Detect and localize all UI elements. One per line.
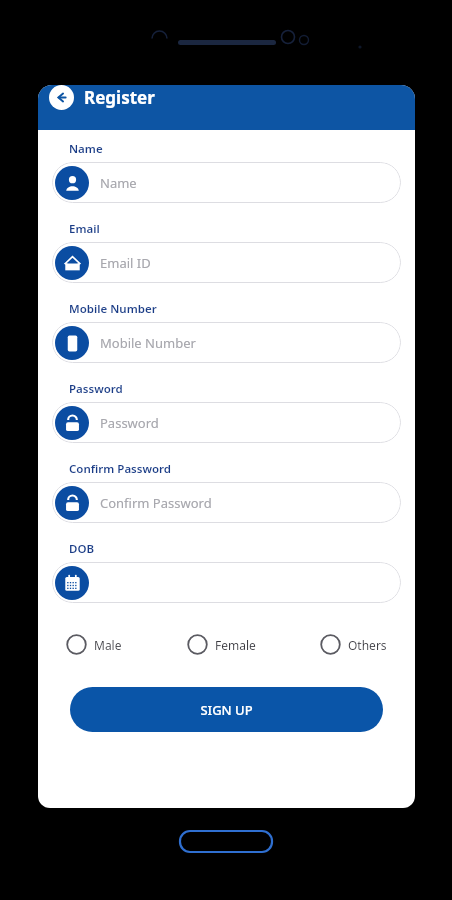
staticText: Password [100, 414, 159, 432]
button[interactable]: SIGN UP [70, 687, 383, 732]
staticText: Name [69, 141, 103, 157]
staticText: Mobile Number [100, 334, 196, 352]
button[interactable]: Male [66, 634, 122, 655]
button[interactable]: Name [52, 162, 401, 203]
staticText: Name [100, 174, 137, 192]
staticText: Female [215, 637, 256, 653]
staticText: Mobile Number [69, 301, 157, 317]
staticText: Email ID [100, 254, 151, 272]
staticText: Others [348, 637, 387, 653]
staticText: Confirm Password [69, 461, 172, 477]
button[interactable]: Others [320, 634, 387, 655]
button[interactable] [52, 562, 401, 603]
button[interactable]: Back [49, 85, 74, 110]
button[interactable]: Female [187, 634, 256, 655]
staticText: DOB [69, 541, 95, 557]
button[interactable]: Password [52, 402, 401, 443]
staticText: Male [94, 637, 122, 653]
staticText: Confirm Password [100, 494, 212, 512]
staticText: SIGN UP [200, 701, 253, 719]
button[interactable]: Email ID [52, 242, 401, 283]
button[interactable]: Confirm Password [52, 482, 401, 523]
button[interactable]: Mobile Number [52, 322, 401, 363]
staticText: Register [84, 86, 155, 109]
staticText: Password [69, 381, 123, 397]
staticText: Email [69, 221, 100, 237]
